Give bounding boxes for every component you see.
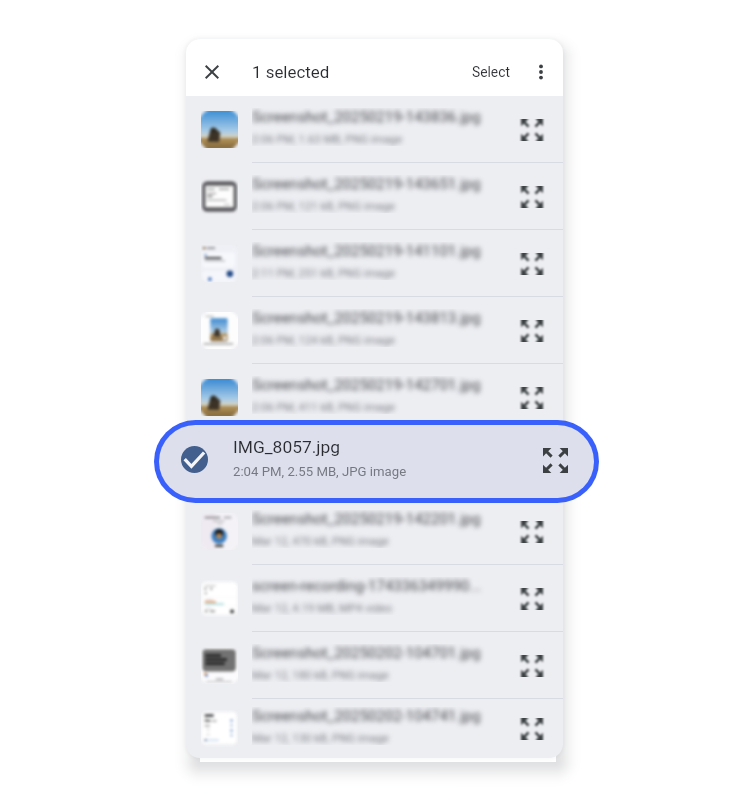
staticText: 2:11 PM, 251 kB, PNG image — [252, 267, 396, 280]
button[interactable]: More options — [521, 52, 561, 92]
staticText: 1 selected — [252, 62, 330, 82]
staticText: Screenshot_20250219-143813.jpg — [252, 309, 481, 327]
staticText: 2:04 PM, 2.55 MB, JPG image — [252, 468, 401, 481]
staticText: IMG_8057.jpg — [233, 437, 340, 457]
button[interactable]: Select — [462, 50, 520, 94]
staticText: IMG_8057.jpg — [252, 443, 345, 461]
staticText: Screenshot_20250202-104741.jpg — [252, 707, 481, 725]
button[interactable]: IMG_8057.jpg — [159, 425, 594, 498]
staticText: Screenshot_20250219-142201.jpg — [252, 510, 481, 528]
staticText: Screenshot_20250202-104701.jpg — [252, 644, 481, 662]
staticText: Select — [472, 64, 510, 80]
staticText: 2:06 PM, 1.63 MB, PNG image — [252, 133, 403, 146]
staticText: 2:06 PM, 411 kB, PNG image — [252, 401, 396, 414]
staticText: 2:06 PM, 124 kB, PNG image — [252, 334, 396, 347]
staticText: Mar 12, 470 kB, PNG image — [252, 535, 389, 548]
staticText: Mar 12, 4.19 MB, MP4 video — [252, 602, 393, 615]
staticText: Screenshot_20250219-141101.jpg — [252, 242, 481, 260]
staticText: screen-recording-174336349990... — [252, 577, 482, 595]
staticText: 2:04 PM, 2.55 MB, JPG image — [233, 464, 407, 479]
staticText: Screenshot_20250219-143651.jpg — [252, 175, 481, 193]
staticText: Mar 12, 180 kB, PNG image — [252, 669, 389, 682]
staticText: 2:06 PM, 121 kB, PNG image — [252, 200, 396, 213]
staticText: Screenshot_20250219-142701.jpg — [252, 376, 481, 394]
staticText: Screenshot_20250219-143836.jpg — [252, 108, 481, 126]
button[interactable]: Close — [192, 52, 232, 92]
staticText: Mar 12, 130 kB, PNG image — [252, 732, 389, 745]
